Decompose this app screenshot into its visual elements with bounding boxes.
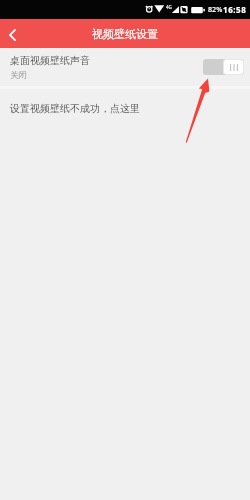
staticText: 82%	[208, 4, 223, 14]
button[interactable]: Toggle wallpaper sound	[203, 59, 244, 75]
button[interactable]: 桌面视频壁纸声音	[0, 48, 250, 86]
staticText: 设置视频壁纸不成功，点这里	[10, 102, 140, 115]
button[interactable]: Back	[0, 19, 25, 48]
staticText: 16:58	[223, 4, 247, 15]
button[interactable]: 设置视频壁纸不成功，点这里	[0, 89, 250, 124]
staticText: 桌面视频壁纸声音	[10, 54, 90, 67]
staticText: 视频壁纸设置	[92, 27, 158, 41]
staticText: 4G	[166, 4, 172, 10]
staticText: 关闭	[10, 70, 27, 81]
